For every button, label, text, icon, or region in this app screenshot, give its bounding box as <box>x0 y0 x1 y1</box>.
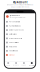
staticText: Payment methods <box>9 25 21 27</box>
staticText: Delivery addresses <box>9 29 24 31</box>
staticText: Saved <box>21 64 26 66</box>
staticText: jordan@example.com <box>10 17 25 18</box>
staticText: Privacy & security <box>9 37 22 39</box>
button[interactable]: Privacy & security <box>4 36 36 40</box>
button[interactable]: Orders <box>12 61 20 67</box>
staticText: My Account <box>12 0 27 4</box>
button[interactable]: Personal details <box>4 20 36 24</box>
button[interactable]: Home <box>4 61 12 67</box>
staticText: Home <box>6 64 10 66</box>
button[interactable]: Payment methods <box>4 24 36 28</box>
button[interactable]: Notifications <box>4 32 36 36</box>
staticText: Personal details <box>9 21 20 23</box>
staticText: Help centre <box>9 46 17 48</box>
staticText: Account <box>29 64 35 66</box>
staticText: Notifications <box>9 33 17 35</box>
staticText: About this app <box>9 50 18 52</box>
staticText: Jordan Avery <box>10 15 20 16</box>
button[interactable]: Sign out <box>4 53 36 57</box>
staticText: Sign out <box>9 54 14 56</box>
button[interactable]: Delivery addresses <box>4 28 36 32</box>
button[interactable]: Help centre <box>4 45 36 49</box>
staticText: Subscriptions <box>9 42 19 43</box>
staticText: Orders <box>13 64 19 66</box>
staticText: and account preferences <box>10 6 29 8</box>
button[interactable]: Jordan Avery <box>4 13 36 20</box>
staticText: Manage your profile, payment methods <box>6 4 33 6</box>
button[interactable]: Account <box>28 61 36 67</box>
button[interactable]: Subscriptions <box>4 40 36 45</box>
button[interactable]: Saved <box>20 61 28 67</box>
button[interactable]: About this app <box>4 49 36 53</box>
